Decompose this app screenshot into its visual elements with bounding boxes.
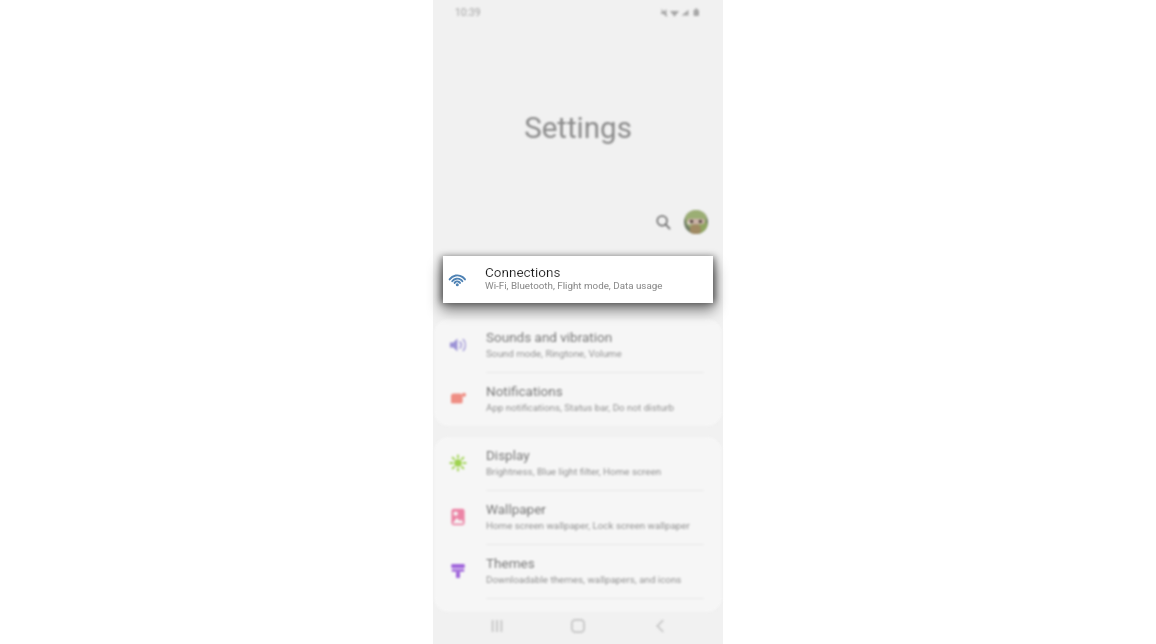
staticText: 10:39 xyxy=(455,7,481,19)
staticText: Wallpaper xyxy=(486,501,546,517)
button[interactable]: Profile xyxy=(683,209,709,235)
button[interactable]: Connections xyxy=(443,256,713,303)
staticText: Sound mode, Ringtone, Volume xyxy=(486,348,622,359)
button[interactable]: Back xyxy=(650,616,670,636)
staticText: Brightness, Blue light filter, Home scre… xyxy=(486,466,662,477)
staticText: Settings xyxy=(524,111,632,146)
button[interactable]: Home xyxy=(568,616,588,636)
button[interactable]: Recent apps xyxy=(487,616,507,636)
staticText: Notifications xyxy=(486,383,563,399)
staticText: Wi-Fi, Bluetooth, Flight mode, Data usag… xyxy=(485,280,663,291)
button[interactable]: Sounds and vibration xyxy=(434,319,722,372)
button[interactable]: Themes xyxy=(434,545,722,598)
staticText: Connections xyxy=(485,264,561,280)
staticText: Themes xyxy=(486,555,535,571)
staticText: App notifications, Status bar, Do not di… xyxy=(486,402,675,413)
button[interactable]: Search xyxy=(649,208,677,236)
button[interactable]: Display xyxy=(434,437,722,490)
staticText: Display xyxy=(486,447,530,463)
staticText: Downloadable themes, wallpapers, and ico… xyxy=(486,574,682,585)
staticText: Sounds and vibration xyxy=(486,329,613,345)
button[interactable]: Notifications xyxy=(434,373,722,426)
button[interactable]: Wallpaper xyxy=(434,491,722,544)
staticText: Home screen wallpaper, Lock screen wallp… xyxy=(486,520,690,531)
